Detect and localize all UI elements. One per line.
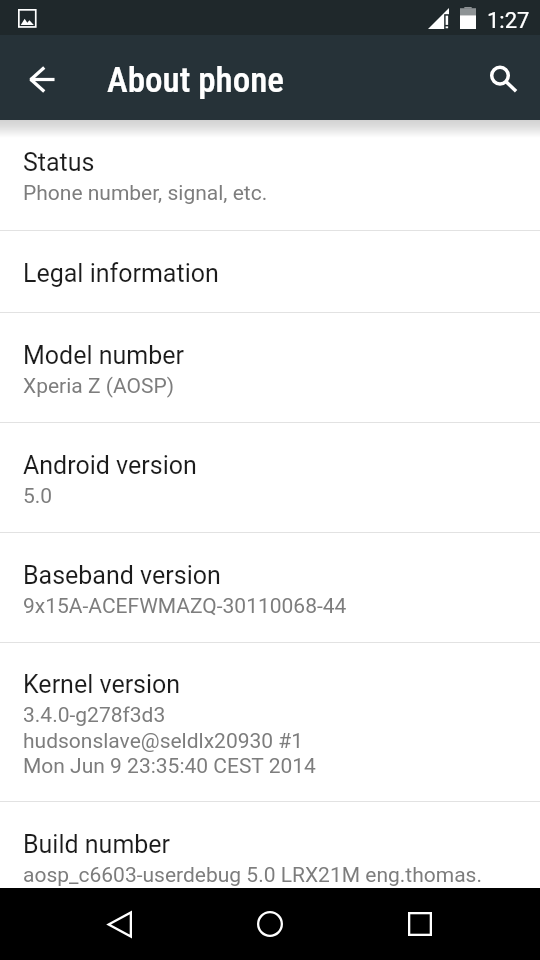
button[interactable]: Status <box>0 120 540 230</box>
staticText: Baseband version <box>23 561 221 590</box>
staticText: Phone number, signal, etc. <box>23 181 268 206</box>
button[interactable]: Navigate up <box>17 55 66 104</box>
staticText: 3.4.0-g278f3d3 hudsonslave@seldlx20930 #… <box>23 703 316 778</box>
staticText: Build number <box>23 830 171 859</box>
button[interactable]: Build number <box>0 802 540 912</box>
button[interactable]: Kernel version <box>0 643 540 801</box>
button[interactable]: Home <box>230 892 310 956</box>
button[interactable]: Baseband version <box>0 533 540 642</box>
staticText: Android version <box>23 451 197 480</box>
staticText: Xperia Z (AOSP) <box>23 374 174 399</box>
staticText: Model number <box>23 341 184 370</box>
staticText: aosp_c6603-userdebug 5.0 LRX21M eng.thom… <box>23 863 482 888</box>
staticText: 1:27 <box>487 8 530 34</box>
staticText: 5.0 <box>23 484 53 509</box>
staticText: Status <box>23 148 95 177</box>
button[interactable]: Recent apps <box>380 892 460 956</box>
staticText: About phone <box>107 60 284 101</box>
staticText: Legal information <box>23 259 219 288</box>
staticText: Kernel version <box>23 670 181 699</box>
staticText: 9x15A-ACEFWMAZQ-30110068-44 <box>23 594 347 619</box>
button[interactable]: Android version <box>0 423 540 532</box>
button[interactable]: Legal information <box>0 231 540 312</box>
button[interactable]: Search <box>476 52 524 100</box>
button[interactable]: Model number <box>0 313 540 422</box>
button[interactable]: Back <box>79 892 159 956</box>
